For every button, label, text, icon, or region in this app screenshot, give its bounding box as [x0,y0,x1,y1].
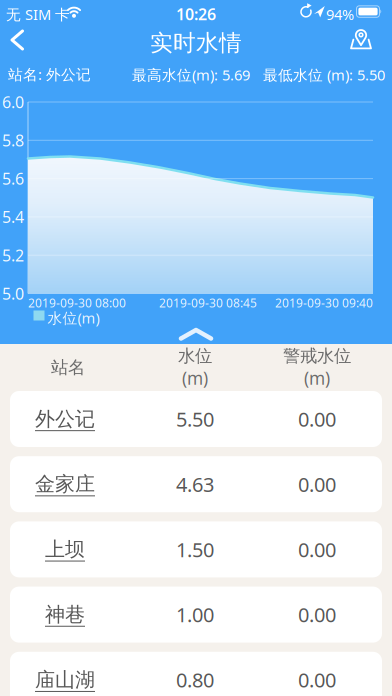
staticText: 水位(m) [47,308,99,327]
staticText: (m) [182,367,208,390]
staticText: (m) [304,367,330,390]
staticText: 最低水位 (m): 5.50 [263,65,385,84]
staticText: 站名 [51,357,85,378]
staticText: 最高水位(m): 5.69 [132,65,250,84]
staticText: 实时水情 [150,29,242,57]
staticText: 2019-09-30 08:45 [159,295,257,311]
staticText: 5.8 [2,130,24,151]
staticText: 庙山湖 [35,667,95,692]
staticText: 5.6 [2,168,24,189]
staticText: 5.0 [2,283,24,304]
staticText: 94% [326,4,354,24]
button[interactable]: 神巷 [10,587,382,643]
staticText: 4.63 [176,471,214,497]
staticText: 0.00 [298,666,336,693]
button[interactable]: 上坝 [10,521,382,577]
staticText: 6.0 [2,91,24,113]
staticText: 无 SIM 卡 [6,4,70,24]
staticText: 0.00 [298,601,336,628]
staticText: 水位 [178,345,212,367]
staticText: 0.80 [176,666,214,693]
button[interactable]: 金家庄 [10,456,382,512]
button[interactable]: 地图 [348,23,374,57]
staticText: 5.2 [2,245,24,266]
staticText: 金家庄 [35,472,95,496]
staticText: 5.50 [176,406,214,432]
button[interactable]: 外公记 [10,391,382,447]
staticText: 0.00 [298,471,336,497]
staticText: 5.4 [2,206,24,227]
staticText: 0.00 [298,406,336,432]
staticText: 2019-09-30 09:40 [275,295,373,311]
staticText: 1.50 [176,536,214,563]
button[interactable]: 庙山湖 [10,652,382,696]
staticText: 站名: 外公记 [8,64,91,84]
staticText: 0.00 [298,536,336,563]
staticText: 10:26 [176,3,216,25]
staticText: 1.00 [176,601,214,628]
staticText: 神巷 [45,602,85,627]
staticText: 外公记 [35,407,95,431]
button[interactable]: 收起 [166,320,226,344]
staticText: 警戒水位 [283,345,351,367]
staticText: 上坝 [45,537,85,562]
button[interactable]: 返回 [0,23,40,57]
staticText: 2019-09-30 08:00 [28,295,126,311]
